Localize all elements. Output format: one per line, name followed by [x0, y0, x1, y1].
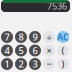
staticText: 1	[4, 58, 9, 70]
staticText: 6	[32, 44, 37, 57]
staticText: AC	[57, 31, 69, 43]
staticText: 7536	[47, 0, 67, 12]
button[interactable]: 5	[15, 44, 27, 56]
button[interactable]: 1	[1, 58, 13, 70]
staticText: )	[61, 58, 64, 70]
button[interactable]: )	[57, 58, 69, 70]
button[interactable]: 4	[1, 44, 13, 56]
button[interactable]: 6	[29, 44, 41, 56]
staticText: (	[61, 44, 64, 57]
button[interactable]: AC	[57, 31, 69, 43]
button[interactable]: ÷	[43, 31, 55, 43]
staticText: 4	[4, 44, 9, 57]
staticText: 8	[18, 31, 23, 43]
button[interactable]: 2	[15, 58, 27, 70]
button[interactable]: ×	[43, 44, 55, 56]
staticText: −	[46, 58, 51, 70]
button[interactable]: 3	[29, 58, 41, 70]
button[interactable]: 7	[1, 31, 13, 43]
staticText: 2	[18, 58, 23, 70]
button[interactable]: −	[43, 58, 55, 70]
button[interactable]: (	[57, 44, 69, 56]
staticText: 5	[18, 44, 23, 57]
button[interactable]: 8	[15, 31, 27, 43]
button[interactable]: 9	[29, 31, 41, 43]
staticText: 9	[32, 31, 37, 43]
staticText: ×	[46, 44, 51, 57]
staticText: 7	[4, 31, 9, 43]
staticText: 3	[32, 58, 37, 70]
staticText: ÷	[46, 31, 51, 43]
